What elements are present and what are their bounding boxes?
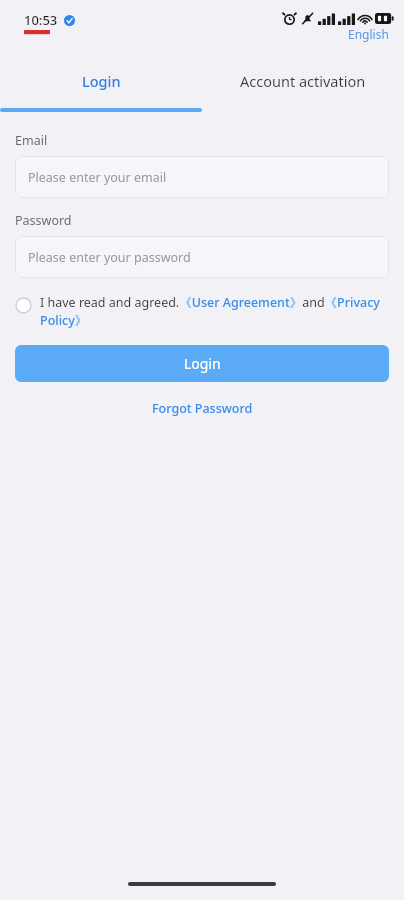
staticText: Login bbox=[184, 354, 221, 373]
staticText: Email bbox=[15, 132, 48, 149]
button[interactable]: English bbox=[346, 24, 391, 44]
staticText: Forgot Password bbox=[152, 400, 253, 417]
staticText: English bbox=[348, 26, 389, 42]
button[interactable]: Please enter your email bbox=[15, 156, 389, 198]
button[interactable]: Account activation bbox=[202, 58, 404, 114]
staticText: I have read and agreed.《User Agreement》a… bbox=[40, 294, 389, 329]
button[interactable]: Please enter your password bbox=[15, 236, 389, 278]
staticText: 10:53 bbox=[24, 11, 58, 29]
button[interactable]: Login bbox=[15, 345, 389, 382]
button[interactable]: Login bbox=[0, 58, 202, 114]
staticText: Please enter your email bbox=[28, 169, 167, 186]
button[interactable]: I have read and agreed.《User Agreement》a… bbox=[0, 290, 404, 329]
staticText: Account activation bbox=[240, 71, 366, 91]
staticText: Please enter your password bbox=[28, 249, 191, 266]
staticText: Password bbox=[15, 212, 72, 229]
staticText: Login bbox=[82, 71, 121, 91]
button[interactable]: Forgot Password bbox=[142, 396, 263, 421]
